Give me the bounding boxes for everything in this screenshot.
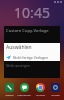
button[interactable]: Messages (17, 83, 31, 96)
staticText: Nachrichten (17, 93, 31, 96)
button[interactable]: Nicht fertige Vorlagen (4, 53, 60, 61)
staticText: Chrome (36, 93, 45, 96)
staticText: Custom Copy-Vorlage (6, 28, 49, 34)
staticText: 10:45 (14, 3, 50, 22)
staticText: Nicht fertige Vorlagen (13, 55, 49, 60)
staticText: Auswählen (6, 44, 32, 51)
staticText: Nicht anzeigen (6, 63, 30, 68)
staticText: Kamera (51, 93, 60, 96)
button[interactable]: Phone (2, 83, 16, 96)
button[interactable]: Chrome (33, 83, 47, 96)
staticText: Telefon (5, 93, 14, 96)
button[interactable]: Camera (48, 83, 62, 96)
